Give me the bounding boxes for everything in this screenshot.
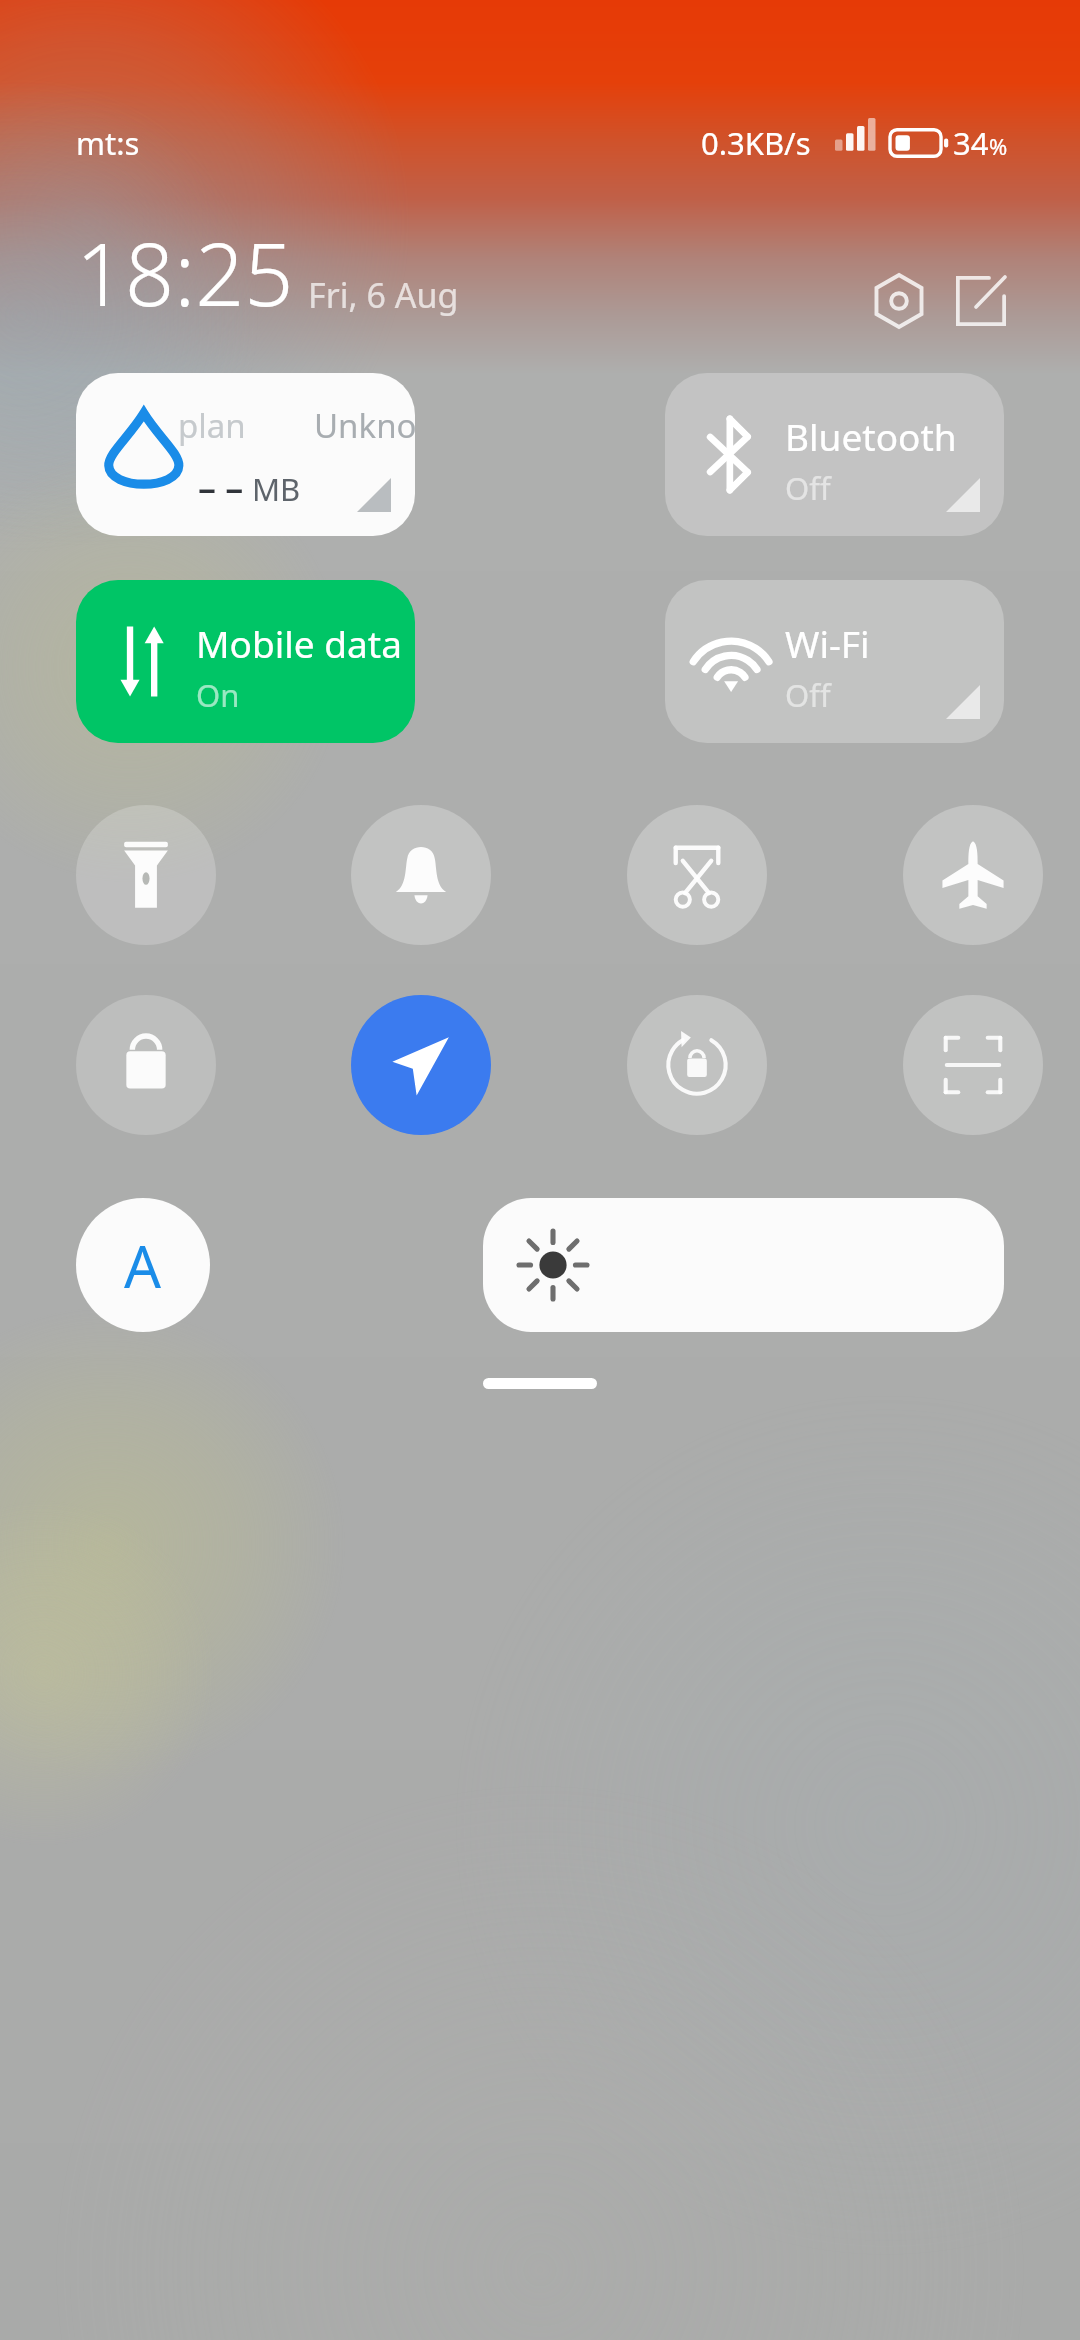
staticText: 18:25 [76,214,294,331]
button[interactable]: Ringer [351,805,491,945]
button[interactable]: Wi-Fi, Off [665,580,1004,743]
staticText: Off [785,467,831,509]
staticText: mt:s [76,122,140,164]
button[interactable]: Scan code [903,995,1043,1135]
staticText: 0.3KB/s [701,122,811,164]
button[interactable]: Data usage [76,373,415,536]
staticText: % [989,131,1008,161]
staticText: Unknown [314,403,415,448]
staticText: plan [178,403,246,448]
button[interactable]: Settings [860,262,938,340]
button[interactable]: Edit tiles [942,262,1020,340]
staticText: MB [252,468,301,510]
staticText: A [124,1226,162,1305]
button[interactable]: Screenshot [627,805,767,945]
button[interactable]: Location [351,995,491,1135]
staticText: Fri, 6 Aug [308,272,459,318]
staticText: On [196,674,240,716]
button[interactable]: Airplane mode [903,805,1043,945]
button[interactable]: Brightness [483,1198,1004,1332]
staticText: Bluetooth [785,411,957,461]
button[interactable]: Automatic brightness [76,1198,210,1332]
staticText: Off [785,674,831,716]
button[interactable]: Screen lock [76,995,216,1135]
button[interactable]: Mobile data, On [76,580,415,743]
button[interactable]: Bluetooth, Off [665,373,1004,536]
button[interactable]: Auto-rotate [627,995,767,1135]
staticText: Mobile data [196,618,402,668]
staticText: – – [198,463,244,512]
staticText: Wi-Fi [785,618,870,668]
button[interactable]: Flashlight [76,805,216,945]
staticText: 34 [953,122,989,164]
